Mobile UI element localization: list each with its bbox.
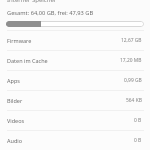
staticText: 17,20 MB [120, 57, 142, 64]
staticText: Interner Speicher [7, 0, 57, 4]
button[interactable]: Apps [0, 70, 150, 90]
staticText: Bilder [7, 97, 23, 104]
button[interactable]: Daten im Cache [0, 50, 150, 70]
staticText: Audio [7, 137, 23, 144]
staticText: 0,99 GB [124, 77, 142, 84]
button[interactable]: Bilder [0, 90, 150, 110]
button[interactable]: Videos [0, 110, 150, 130]
staticText: Daten im Cache [7, 57, 48, 64]
staticText: Gesamt: 64,00 GB, frei: 47,93 GB [7, 9, 94, 17]
staticText: 0 B [134, 117, 142, 124]
staticText: Apps [7, 77, 20, 84]
staticText: Firmware [7, 37, 32, 44]
staticText: 564 KB [126, 97, 142, 104]
button[interactable]: Audio [0, 130, 150, 150]
staticText: 12,67 GB [121, 37, 142, 44]
button[interactable]: Firmware [0, 30, 150, 50]
staticText: Videos [7, 117, 25, 124]
staticText: 0 B [134, 137, 142, 144]
